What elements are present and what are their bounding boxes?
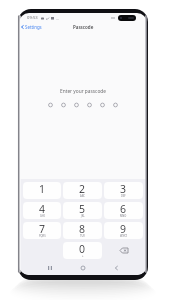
staticText: Enter your passcode <box>19 88 147 95</box>
button[interactable]: 8 <box>63 222 102 239</box>
button[interactable]: 7 <box>23 222 61 239</box>
staticText: GHI <box>40 214 45 218</box>
button[interactable]: Home <box>73 261 93 275</box>
button[interactable]: Delete <box>104 242 143 259</box>
staticText: ABC <box>80 194 85 198</box>
staticText: 2 <box>79 182 86 196</box>
staticText: 3 <box>120 182 127 196</box>
button[interactable]: 4 <box>23 202 61 219</box>
button[interactable]: Back <box>106 261 126 275</box>
button[interactable]: 6 <box>104 202 143 219</box>
button[interactable]: 9 <box>104 222 143 239</box>
staticText: DEF <box>121 194 126 198</box>
button[interactable]: 1 <box>23 182 61 199</box>
staticText: 09:53 <box>27 15 38 21</box>
staticText: 7 <box>39 222 46 236</box>
staticText: + <box>82 254 84 258</box>
button[interactable]: 5 <box>63 202 102 219</box>
staticText: 9 <box>120 222 127 236</box>
staticText: Passcode <box>73 24 94 30</box>
staticText: JKL <box>81 214 85 218</box>
button[interactable]: Settings <box>20 23 43 31</box>
staticText: Settings <box>25 24 42 30</box>
staticText: 5 <box>79 202 86 216</box>
button[interactable]: 3 <box>104 182 143 199</box>
staticText: TUV <box>80 234 85 238</box>
staticText: PQRS <box>39 234 46 238</box>
button[interactable]: 0 <box>63 242 102 259</box>
button[interactable]: Recents <box>40 261 60 275</box>
staticText: ... <box>56 16 60 21</box>
staticText: 6 <box>120 202 127 216</box>
staticText: 8 <box>79 222 86 236</box>
button[interactable]: 2 <box>63 182 102 199</box>
staticText: 4 <box>39 202 46 216</box>
staticText: 0 <box>79 242 86 256</box>
staticText: MNO <box>120 214 127 218</box>
staticText: 1 <box>39 182 46 196</box>
staticText: WXYZ <box>120 234 127 238</box>
